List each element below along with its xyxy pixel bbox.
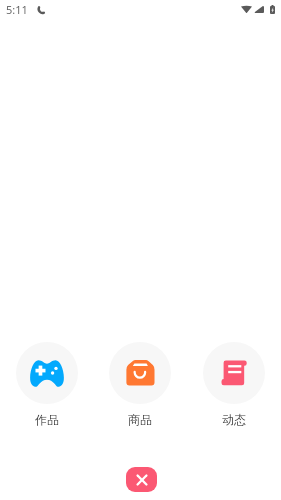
button[interactable]: 动态 bbox=[187, 342, 281, 427]
button[interactable]: Close bbox=[126, 467, 157, 492]
staticText: 5:11 bbox=[6, 2, 28, 17]
button[interactable]: 商品 bbox=[93, 342, 187, 427]
staticText: 动态 bbox=[222, 412, 246, 427]
staticText: 作品 bbox=[35, 412, 59, 427]
staticText: 商品 bbox=[128, 412, 152, 427]
button[interactable]: 作品 bbox=[0, 342, 93, 427]
